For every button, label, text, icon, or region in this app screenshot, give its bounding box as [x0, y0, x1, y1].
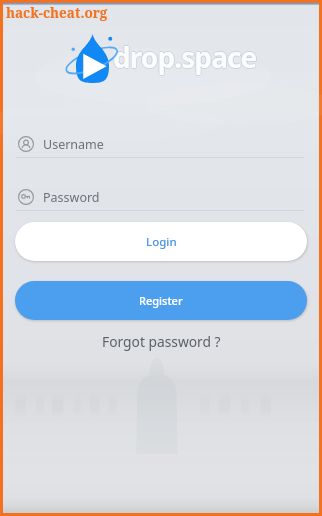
staticText: Password — [43, 189, 100, 206]
staticText: hack-cheat.org — [6, 4, 108, 22]
staticText: drop.space — [114, 38, 258, 76]
staticText: drop.space — [113, 37, 257, 75]
staticText: Register — [139, 293, 183, 308]
button[interactable]: Register — [15, 281, 307, 320]
staticText: drop.space — [112, 38, 256, 76]
staticText: Login — [146, 234, 177, 250]
button[interactable]: Password — [18, 184, 304, 210]
button[interactable]: Login — [15, 222, 307, 261]
staticText: Username — [43, 136, 104, 153]
staticText: drop.space — [113, 38, 257, 76]
button[interactable]: Forgot password ? — [98, 328, 225, 355]
button[interactable]: Username — [18, 131, 304, 157]
staticText: drop.space — [113, 39, 257, 77]
